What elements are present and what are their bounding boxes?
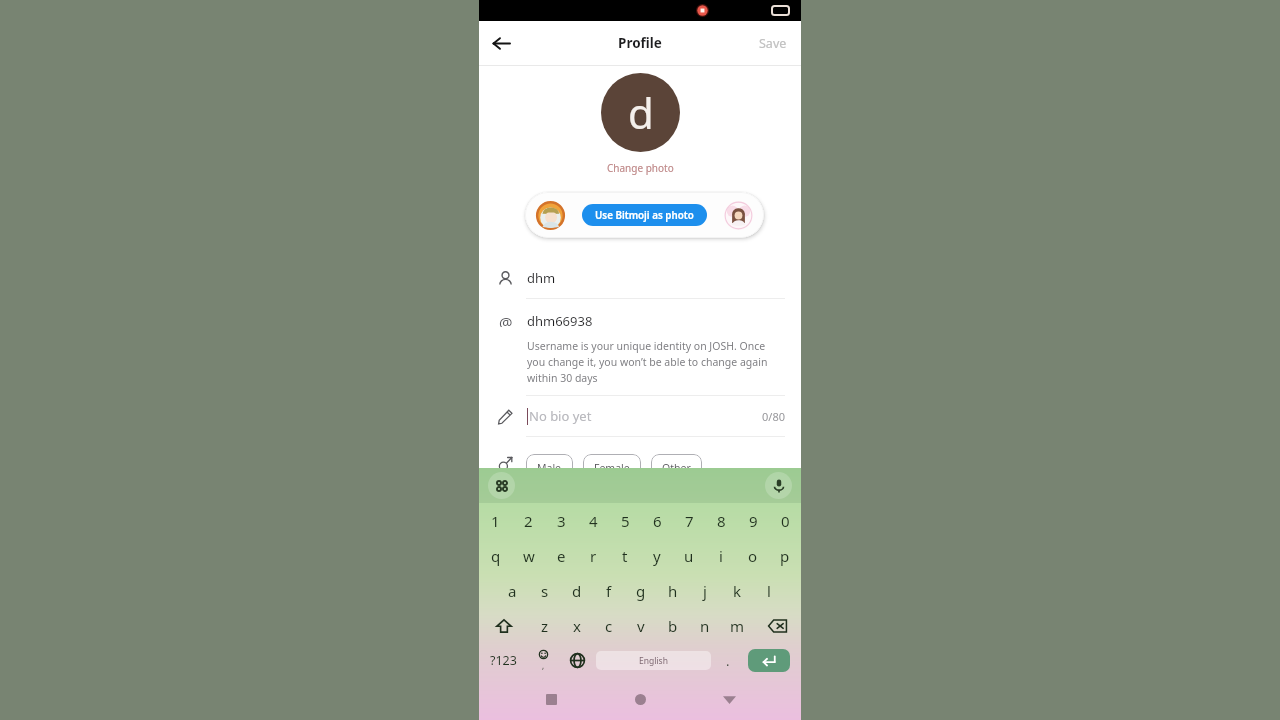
button[interactable]: 7 bbox=[673, 503, 705, 538]
staticText: 7 bbox=[685, 511, 694, 531]
button[interactable]: k bbox=[721, 573, 753, 608]
button[interactable]: w bbox=[512, 538, 545, 573]
button[interactable]: c bbox=[593, 608, 625, 643]
button[interactable]: Shift bbox=[479, 608, 528, 643]
button[interactable]: q bbox=[479, 538, 512, 573]
button[interactable]: 8 bbox=[705, 503, 737, 538]
staticText: English bbox=[639, 655, 668, 667]
staticText: t bbox=[622, 546, 628, 566]
button[interactable]: Save bbox=[745, 21, 801, 65]
staticText: h bbox=[668, 581, 678, 601]
button[interactable]: 1 bbox=[479, 503, 512, 538]
staticText: , bbox=[542, 660, 545, 671]
button[interactable]: Emoji bbox=[527, 643, 560, 678]
button[interactable]: Change photo bbox=[603, 157, 678, 179]
staticText: No bio yet bbox=[529, 407, 592, 425]
staticText: 8 bbox=[717, 511, 726, 531]
button[interactable]: e bbox=[545, 538, 577, 573]
button[interactable]: x bbox=[561, 608, 593, 643]
button[interactable]: n bbox=[689, 608, 721, 643]
button[interactable]: Language bbox=[560, 643, 594, 678]
staticText: 4 bbox=[589, 511, 598, 531]
staticText: dhm66938 bbox=[527, 312, 593, 330]
button[interactable]: Back bbox=[479, 21, 523, 65]
staticText: o bbox=[748, 546, 758, 566]
button[interactable]: i bbox=[705, 538, 737, 573]
staticText: x bbox=[573, 616, 581, 636]
staticText: d bbox=[572, 581, 582, 601]
button[interactable]: s bbox=[529, 573, 561, 608]
button[interactable]: z bbox=[528, 608, 561, 643]
button[interactable]: Male bbox=[526, 454, 573, 482]
button[interactable]: a bbox=[496, 573, 529, 608]
button[interactable]: 5 bbox=[609, 503, 641, 538]
staticText: ?123 bbox=[490, 652, 517, 669]
staticText: Use Bitmoji as photo bbox=[595, 209, 694, 222]
button[interactable]: Recents bbox=[534, 682, 568, 716]
staticText: 6 bbox=[653, 511, 662, 531]
button[interactable]: Female bbox=[583, 454, 641, 482]
staticText: f bbox=[606, 581, 612, 601]
staticText: r bbox=[590, 546, 597, 566]
button[interactable]: Profile photo bbox=[601, 73, 680, 152]
button[interactable]: 4 bbox=[577, 503, 609, 538]
staticText: Female bbox=[594, 461, 630, 475]
staticText: 0/80 bbox=[762, 409, 785, 424]
staticText: q bbox=[491, 546, 501, 566]
staticText: z bbox=[541, 616, 549, 636]
button[interactable]: y bbox=[641, 538, 673, 573]
staticText: j bbox=[703, 581, 707, 601]
button[interactable]: p bbox=[769, 538, 801, 573]
staticText: p bbox=[780, 546, 790, 566]
button[interactable]: b bbox=[657, 608, 689, 643]
button[interactable]: m bbox=[721, 608, 753, 643]
button[interactable]: Home bbox=[623, 682, 657, 716]
staticText: w bbox=[523, 546, 535, 566]
staticText: Profile bbox=[618, 34, 662, 52]
staticText: 9 bbox=[749, 511, 758, 531]
button[interactable]: d bbox=[561, 573, 593, 608]
staticText: . bbox=[726, 652, 730, 670]
staticText: k bbox=[733, 581, 742, 601]
staticText: l bbox=[767, 581, 771, 601]
button[interactable]: Voice input bbox=[765, 472, 792, 499]
button[interactable]: . bbox=[713, 643, 742, 678]
button[interactable]: Use Bitmoji as photo bbox=[525, 192, 764, 238]
button[interactable]: f bbox=[593, 573, 625, 608]
button[interactable]: o bbox=[737, 538, 769, 573]
button[interactable]: r bbox=[577, 538, 609, 573]
staticText: d bbox=[628, 84, 654, 141]
staticText: b bbox=[668, 616, 678, 636]
button[interactable]: Enter bbox=[748, 649, 790, 672]
staticText: m bbox=[730, 616, 745, 636]
button[interactable]: Use Bitmoji as photo bbox=[582, 204, 707, 226]
staticText: Change photo bbox=[607, 161, 674, 175]
button[interactable]: ?123 bbox=[479, 643, 527, 678]
button[interactable]: 9 bbox=[737, 503, 769, 538]
button[interactable]: Backspace bbox=[753, 608, 801, 643]
staticText: dhm bbox=[527, 269, 556, 287]
staticText: Save bbox=[759, 35, 787, 52]
staticText: i bbox=[719, 546, 723, 566]
staticText: e bbox=[557, 546, 566, 566]
button[interactable]: 0 bbox=[769, 503, 801, 538]
button[interactable]: g bbox=[625, 573, 657, 608]
staticText: g bbox=[636, 581, 646, 601]
button[interactable]: t bbox=[609, 538, 641, 573]
button[interactable]: l bbox=[753, 573, 785, 608]
button[interactable]: v bbox=[625, 608, 657, 643]
button[interactable]: 2 bbox=[512, 503, 545, 538]
button[interactable]: 3 bbox=[545, 503, 577, 538]
button[interactable]: j bbox=[689, 573, 721, 608]
button[interactable]: 6 bbox=[641, 503, 673, 538]
button[interactable]: Back bbox=[712, 682, 746, 716]
button[interactable]: Other bbox=[651, 454, 702, 482]
staticText: a bbox=[508, 581, 517, 601]
staticText: 5 bbox=[621, 511, 630, 531]
staticText: c bbox=[605, 616, 613, 636]
button[interactable]: h bbox=[657, 573, 689, 608]
button[interactable]: Toolbar bbox=[488, 472, 515, 499]
button[interactable]: English bbox=[596, 651, 711, 670]
button[interactable]: u bbox=[673, 538, 705, 573]
staticText: s bbox=[541, 581, 549, 601]
